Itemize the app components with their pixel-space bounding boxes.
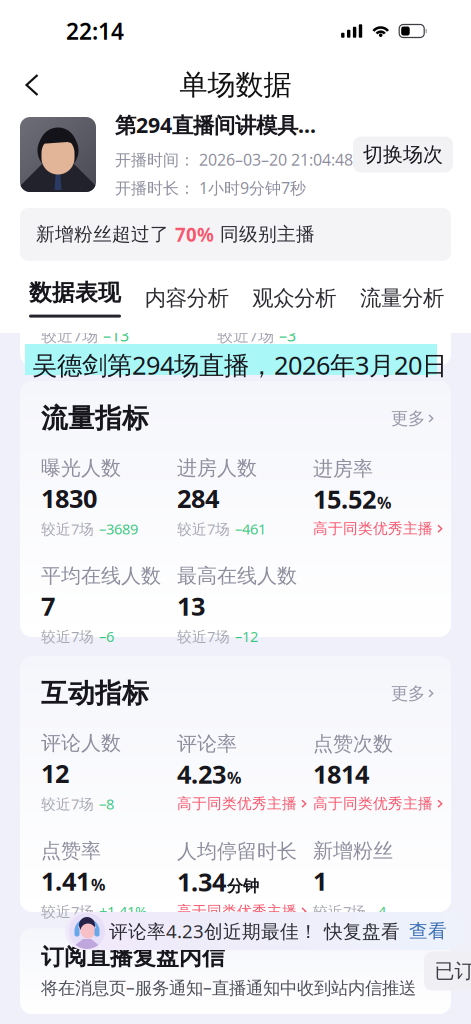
button[interactable]: 返回	[10, 63, 54, 107]
button[interactable]: 流量分析	[360, 285, 444, 311]
staticText: –12	[235, 627, 258, 646]
staticText: %	[377, 492, 391, 513]
staticText: –4	[371, 902, 386, 921]
staticText: 平均在线人数	[41, 563, 161, 588]
staticText: 284	[177, 481, 219, 515]
staticText: 点赞率	[41, 838, 101, 863]
staticText: –6	[99, 627, 114, 646]
staticText: 点赞次数	[313, 731, 393, 756]
staticText: 同级别主播	[214, 223, 315, 246]
staticText: 高于同类优秀主播	[313, 795, 433, 813]
staticText: 较近7场	[41, 325, 98, 346]
staticText: 订阅直播复盘内信	[41, 943, 225, 971]
staticText: 高于同类优秀主播	[313, 520, 433, 538]
staticText: 切换场次	[363, 142, 443, 167]
staticText: 更多	[391, 408, 425, 429]
button[interactable]: 高于同类优秀主播	[177, 795, 306, 813]
staticText: –3	[279, 325, 296, 346]
staticText: 较近7场	[41, 627, 94, 646]
staticText: 22:14	[66, 16, 124, 46]
staticText: 流量指标	[41, 402, 149, 435]
staticText: 开播时长： 1小时9分钟7秒	[115, 177, 306, 198]
button[interactable]: 高于同类优秀主播	[313, 520, 442, 538]
staticText: –13	[103, 325, 129, 346]
staticText: 评论率	[177, 731, 237, 756]
staticText: –3689	[99, 519, 138, 538]
staticText: 70%	[175, 222, 214, 247]
button[interactable]: 评论率4.23创近期最佳！ 快复盘看	[65, 912, 465, 950]
staticText: 12	[41, 756, 69, 790]
staticText: 开播时间： 2026–03–20 21:04:48	[115, 149, 353, 170]
staticText: %	[91, 874, 105, 895]
button[interactable]: 内容分析	[145, 285, 229, 311]
button[interactable]: 更多	[391, 408, 433, 429]
staticText: 7	[41, 589, 55, 623]
staticText: 内容分析	[145, 285, 229, 311]
staticText: 互动指标	[41, 677, 149, 710]
staticText: 高于同类优秀主播	[177, 795, 297, 813]
staticText: 进房人数	[177, 456, 257, 480]
staticText: 较近7场	[313, 902, 366, 921]
staticText: 更多	[391, 683, 425, 704]
staticText: 1	[313, 864, 327, 898]
staticText: 高于同类优秀主播	[177, 902, 297, 920]
staticText: 曝光人数	[41, 456, 121, 480]
staticText: 将在消息页–服务通知–直播通知中收到站内信推送	[41, 976, 416, 999]
staticText: –461	[235, 519, 266, 538]
staticText: 单场数据	[179, 68, 291, 102]
staticText: 1830	[41, 481, 97, 515]
staticText: 已订阅	[434, 959, 471, 983]
button[interactable]: 切换场次	[353, 136, 453, 172]
staticText: 人均停留时长	[177, 839, 297, 864]
staticText: 流量分析	[360, 285, 444, 311]
button[interactable]: 高于同类优秀主播	[177, 902, 306, 920]
staticText: –8	[99, 794, 114, 813]
staticText: 1.41	[41, 864, 90, 898]
staticText: 第294直播间讲模具...	[115, 111, 316, 139]
staticText: 较近7场	[217, 325, 274, 346]
staticText: 15.52	[313, 482, 376, 516]
staticText: 1.34	[177, 865, 226, 898]
staticText: 进房率	[313, 456, 373, 481]
staticText: 吴德剑第294场直播，2026年3月20日	[32, 348, 447, 382]
button[interactable]: 高于同类优秀主播	[313, 795, 442, 813]
staticText: 1814	[313, 757, 369, 791]
staticText: 4.23	[177, 757, 226, 791]
staticText: 观众分析	[252, 285, 336, 311]
staticText: 数据表现	[29, 279, 121, 307]
staticText: 分钟	[227, 876, 259, 896]
staticText: +1.41%	[99, 902, 147, 921]
staticText: 较近7场	[41, 902, 94, 921]
staticText: 较近7场	[177, 519, 230, 538]
staticText: 较近7场	[41, 519, 94, 538]
staticText: 评论率4.23创近期最佳！ 快复盘看	[109, 919, 400, 943]
button[interactable]: 数据表现	[29, 279, 121, 318]
staticText: 新增粉丝超过了	[36, 223, 175, 246]
button[interactable]: 更多	[391, 683, 433, 704]
button[interactable]: 已订阅	[424, 951, 471, 990]
staticText: 13	[177, 589, 205, 623]
staticText: 较近7场	[41, 794, 94, 813]
button[interactable]: 观众分析	[252, 285, 336, 311]
staticText: 新增粉丝	[313, 838, 393, 863]
staticText: %	[227, 767, 241, 788]
staticText: 查看	[409, 919, 447, 942]
staticText: 较近7场	[177, 627, 230, 646]
staticText: 评论人数	[41, 731, 121, 755]
staticText: 最高在线人数	[177, 563, 297, 588]
